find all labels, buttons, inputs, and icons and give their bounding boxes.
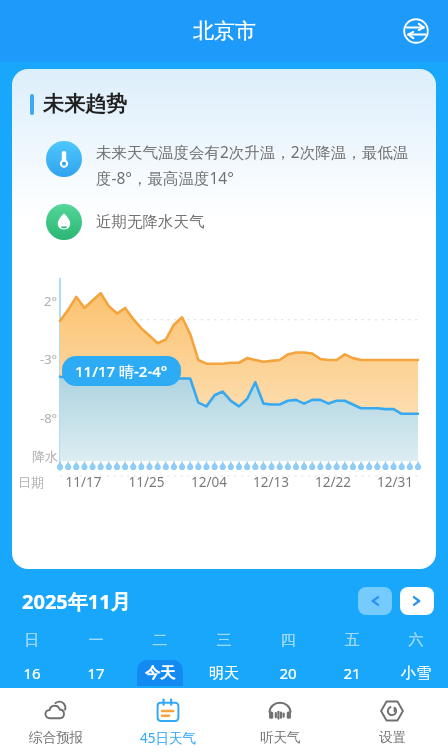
button[interactable]: Switch city <box>398 13 434 49</box>
staticText: 明天 <box>209 664 239 683</box>
staticText: -3° <box>40 350 58 368</box>
staticText: 45日天气 <box>140 729 196 747</box>
staticText: 12/31 <box>364 473 426 491</box>
button[interactable]: 综合预报 <box>0 688 112 756</box>
staticText: 未来趋势 <box>43 91 127 117</box>
button[interactable]: Next month <box>400 587 434 615</box>
staticText: 20 <box>279 663 297 683</box>
staticText: 二 <box>128 631 192 650</box>
staticText: 综合预报 <box>29 729 83 746</box>
button[interactable]: 17 <box>73 660 119 686</box>
staticText: -8° <box>40 409 58 427</box>
staticText: 11/17 晴-2-4° <box>75 361 168 381</box>
staticText: 今天 <box>145 664 175 683</box>
staticText: 12/04 <box>178 473 240 491</box>
button[interactable]: 听天气 <box>224 688 336 756</box>
button[interactable]: 小雪 <box>393 660 439 686</box>
staticText: 六 <box>384 631 448 650</box>
button[interactable]: 21 <box>329 660 375 686</box>
staticText: 11/25 <box>115 473 178 491</box>
button[interactable]: 明天 <box>201 660 247 686</box>
staticText: 五 <box>320 631 384 650</box>
staticText: 2025年11月 <box>22 588 131 615</box>
staticText: 设置 <box>379 729 406 746</box>
button[interactable]: 11/17 晴-2-4° <box>62 356 181 386</box>
staticText: 近期无降水天气 <box>96 212 205 232</box>
staticText: 降水 <box>32 448 58 464</box>
staticText: 北京市 <box>193 18 256 44</box>
staticText: 17 <box>87 663 105 683</box>
button[interactable]: 今天 <box>137 660 183 686</box>
button[interactable]: 20 <box>265 660 311 686</box>
staticText: 小雪 <box>401 664 431 683</box>
staticText: 未来天气温度会有2次升温，2次降温，最低温度-8°，最高温度14° <box>96 141 414 188</box>
staticText: 四 <box>256 631 320 650</box>
button[interactable]: Previous month <box>358 587 392 615</box>
staticText: 11/17 <box>52 473 115 491</box>
button[interactable]: 45日天气 <box>112 688 224 756</box>
staticText: 12/13 <box>240 473 302 491</box>
button[interactable]: 16 <box>9 660 55 686</box>
staticText: 12/22 <box>302 473 364 491</box>
staticText: 日期 <box>18 474 44 490</box>
staticText: 一 <box>64 631 128 650</box>
staticText: 16 <box>23 663 41 683</box>
staticText: 日 <box>0 631 64 650</box>
staticText: 2° <box>44 292 58 310</box>
button[interactable]: 设置 <box>336 688 448 756</box>
staticText: 三 <box>192 631 256 650</box>
staticText: 听天气 <box>260 729 301 746</box>
staticText: 21 <box>343 663 361 683</box>
